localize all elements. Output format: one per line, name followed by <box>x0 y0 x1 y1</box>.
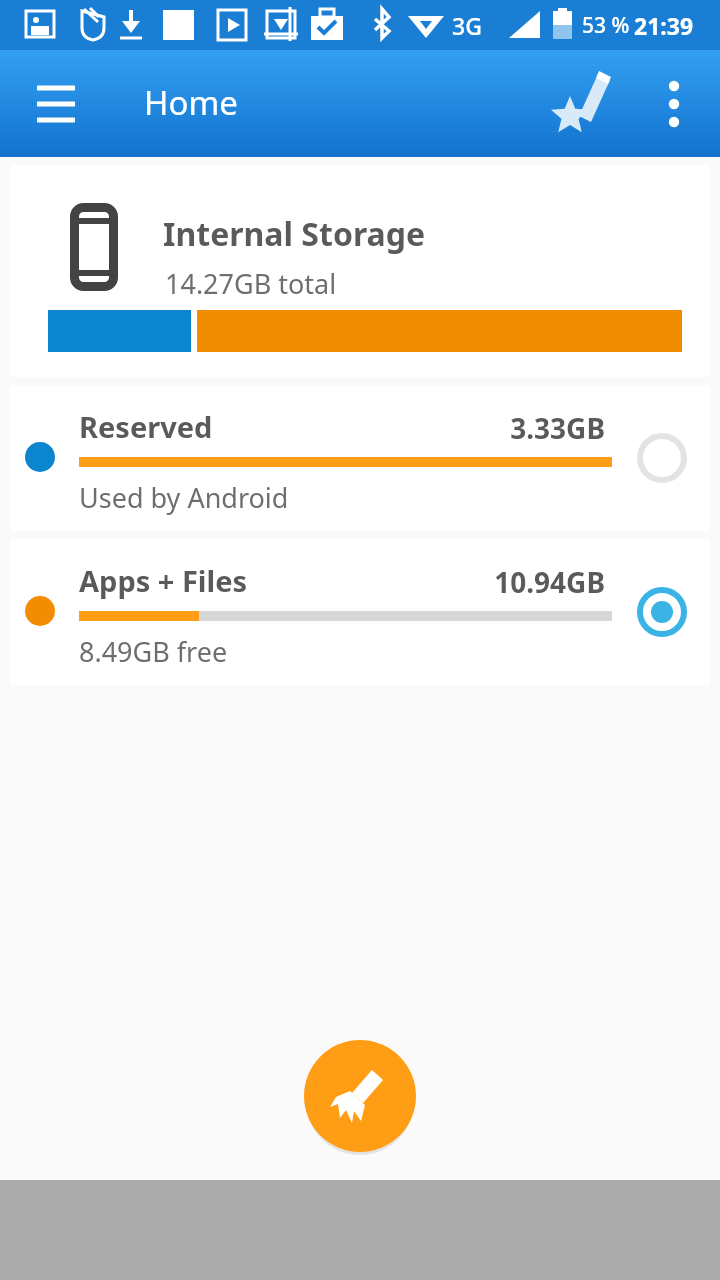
staticText: Reserved <box>79 407 213 446</box>
staticText: 14.27GB total <box>165 265 337 302</box>
staticText: 3G <box>452 10 482 41</box>
staticText: 8.49GB free <box>79 633 228 670</box>
staticText: Home <box>144 80 238 125</box>
staticText: Internal Storage <box>163 212 426 256</box>
staticText: 21:39 <box>634 10 694 41</box>
button[interactable]: Internal Storage <box>10 165 710 377</box>
button[interactable]: Not selected <box>632 428 692 488</box>
staticText: Used by Android <box>79 479 289 516</box>
button[interactable]: Open navigation menu <box>20 68 92 140</box>
button[interactable]: Magic clean <box>548 62 632 146</box>
button[interactable]: More options <box>638 68 710 140</box>
staticText: 3.33GB <box>400 409 605 447</box>
button[interactable] <box>10 385 710 531</box>
button[interactable]: Selected <box>632 582 692 642</box>
staticText: 10.94GB <box>400 563 605 601</box>
button[interactable] <box>10 539 710 685</box>
staticText: Apps + Files <box>79 561 248 600</box>
button[interactable]: Clean <box>304 1040 416 1152</box>
staticText: 53 % <box>582 11 630 40</box>
